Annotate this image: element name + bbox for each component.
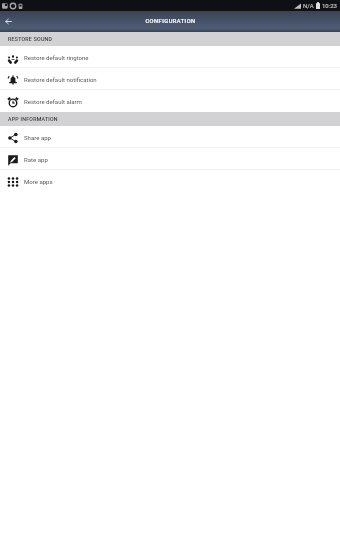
staticText: Restore default alarm — [24, 98, 82, 105]
staticText: N/A — [303, 2, 314, 9]
button[interactable]: Back — [2, 15, 15, 28]
staticText: CONFIGURATION — [145, 18, 196, 25]
staticText: Restore default notification — [24, 76, 97, 83]
staticText: More apps — [24, 178, 53, 185]
button[interactable]: Rate app — [0, 148, 340, 169]
staticText: Rate app — [24, 156, 48, 163]
button[interactable]: Restore default notification — [0, 68, 340, 89]
button[interactable]: Restore default alarm — [0, 90, 340, 112]
staticText: RESTORE SOUND — [8, 36, 53, 42]
staticText: Share app — [24, 134, 51, 141]
button[interactable]: Share app — [0, 126, 340, 147]
button[interactable]: Restore default ringtone — [0, 46, 340, 67]
button[interactable]: More apps — [0, 170, 340, 192]
staticText: 10:23 — [322, 2, 337, 9]
staticText: Restore default ringtone — [24, 54, 89, 61]
staticText: APP INFORMATION — [8, 116, 58, 122]
